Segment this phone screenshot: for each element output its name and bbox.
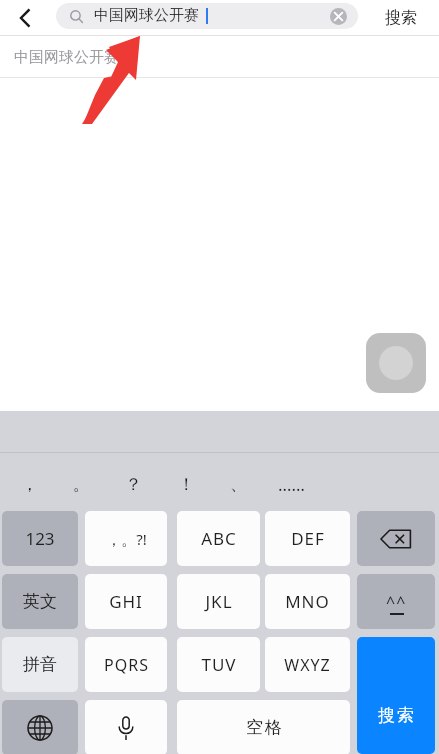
button[interactable]: GHI [85,574,167,629]
button[interactable]: MNO [265,574,350,629]
button[interactable]: 中国网球公开赛 [0,36,439,78]
button[interactable]: 搜索 [357,637,435,754]
button[interactable]: WXYZ [265,637,350,692]
staticText: ， [21,474,38,495]
staticText: GHI [109,590,143,613]
button[interactable]: 、 [215,463,261,505]
button[interactable]: Clear [329,7,348,26]
button[interactable]: Assistive touch [366,333,426,393]
button[interactable]: Backspace [357,511,435,566]
button[interactable]: JKL [177,574,260,629]
staticText: 123 [25,527,55,550]
button[interactable]: 英文 [2,574,78,629]
button[interactable]: 。 [58,463,104,505]
staticText: 英文 [23,591,57,612]
staticText: 搜索 [377,705,415,726]
button[interactable]: ABC [177,511,260,566]
staticText: 空格 [245,717,283,738]
staticText: TUV [201,653,237,676]
button[interactable]: ！ [163,463,209,505]
staticText: ！ [178,474,195,495]
button[interactable]: ，。?! [85,511,167,566]
button[interactable]: 搜索 [365,0,437,36]
button[interactable]: PQRS [85,637,167,692]
staticText: ，。?! [106,529,147,549]
button[interactable]: DEF [265,511,350,566]
staticText: JKL [205,590,233,613]
staticText: PQRS [104,654,149,676]
button[interactable]: ？ [110,463,156,505]
button[interactable]: 中国网球公开赛 [56,3,358,29]
staticText: ？ [125,474,142,495]
button[interactable]: TUV [177,637,260,692]
staticText: 、 [230,474,247,495]
staticText: 搜索 [385,8,417,28]
button[interactable]: …… [268,463,314,505]
staticText: 中国网球公开赛 [14,48,119,67]
button[interactable]: Voice input [85,700,167,754]
staticText: ABC [201,527,237,550]
staticText: DEF [291,527,325,550]
button[interactable]: 空格 [177,700,350,754]
staticText: WXYZ [284,654,331,676]
staticText: …… [278,473,305,496]
staticText: 拼音 [23,654,57,675]
staticText: 中国网球公开赛 [94,6,199,25]
staticText: 。 [73,474,90,495]
button[interactable]: 123 [2,511,78,566]
button[interactable]: Back [4,0,46,36]
staticText: ^^ [386,591,407,613]
button[interactable]: Emoticon [357,574,435,629]
staticText: MNO [285,590,330,613]
button[interactable]: Switch keyboard [2,700,78,754]
button[interactable]: 拼音 [2,637,78,692]
button[interactable]: ， [6,463,52,505]
